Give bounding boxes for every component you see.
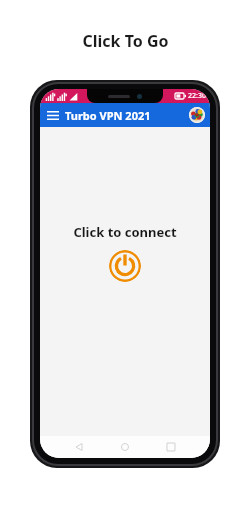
staticText: Click to connect (73, 223, 177, 241)
staticText: Click To Go (82, 30, 169, 52)
button[interactable]: Recent apps (162, 438, 180, 456)
staticText: Turbo VPN 2021 (65, 108, 151, 123)
button[interactable]: Back (70, 438, 88, 456)
button[interactable]: Select server location (189, 107, 205, 123)
staticText: 22:30 (188, 91, 206, 101)
button[interactable]: Connect VPN (109, 250, 141, 282)
button[interactable]: Open navigation menu (44, 106, 62, 124)
button[interactable]: Home (116, 438, 134, 456)
